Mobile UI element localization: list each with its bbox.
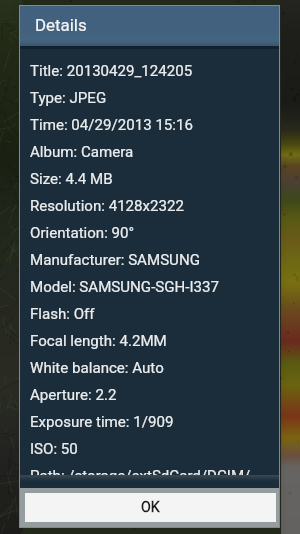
staticText: Model: SAMSUNG-SGH-I337 bbox=[30, 278, 220, 296]
button[interactable]: OK bbox=[25, 493, 276, 522]
staticText: Orientation: 90° bbox=[30, 224, 135, 242]
staticText: Type: JPEG bbox=[30, 89, 107, 107]
staticText: Manufacturer: SAMSUNG bbox=[30, 251, 200, 269]
staticText: Flash: Off bbox=[30, 305, 95, 323]
staticText: Title: 20130429_124205 bbox=[30, 62, 193, 80]
staticText: Aperture: 2.2 bbox=[30, 386, 117, 404]
staticText: Details bbox=[35, 15, 87, 35]
staticText: Time: 04/29/2013 15:16 bbox=[30, 116, 193, 134]
staticText: Path: /storage/extSdCard/DCIM/ bbox=[30, 467, 251, 475]
staticText: Album: Camera bbox=[30, 143, 134, 161]
staticText: OK bbox=[141, 499, 160, 516]
staticText: Exposure time: 1/909 bbox=[30, 413, 174, 431]
staticText: Size: 4.4 MB bbox=[30, 170, 113, 188]
staticText: Focal length: 4.2MM bbox=[30, 332, 167, 350]
staticText: ISO: 50 bbox=[30, 440, 78, 458]
staticText: White balance: Auto bbox=[30, 359, 164, 377]
staticText: Resolution: 4128x2322 bbox=[30, 197, 184, 215]
